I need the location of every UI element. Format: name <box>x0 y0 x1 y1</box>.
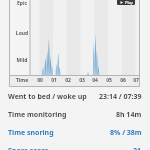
staticText: 02 <box>61 77 75 84</box>
staticText: 07 <box>129 77 143 84</box>
staticText: Mild <box>14 57 30 64</box>
staticText: Snore score <box>8 146 49 150</box>
button[interactable]: Time monitoring <box>0 106 150 124</box>
staticText: 04 <box>88 77 102 84</box>
staticText: Play <box>124 0 133 5</box>
staticText: Epic <box>14 0 30 7</box>
button[interactable]: Play <box>117 0 135 5</box>
staticText: 05 <box>102 77 116 84</box>
staticText: Time monitoring <box>8 110 67 120</box>
staticText: 23:14 / 07:39 <box>99 92 142 102</box>
staticText: 8h 14m <box>116 110 142 120</box>
staticText: 8% / 38m <box>110 128 142 138</box>
staticText: 00 <box>33 77 47 84</box>
staticText: 06 <box>116 77 130 84</box>
staticText: 01 <box>47 77 61 84</box>
staticText: Time <box>14 77 30 84</box>
button[interactable]: Went to bed / woke up <box>0 88 150 106</box>
staticText: Loud <box>14 30 30 37</box>
button[interactable]: Time snoring <box>0 124 150 142</box>
staticText: Time snoring <box>8 128 54 138</box>
staticText: 21 <box>133 146 142 150</box>
button[interactable]: Snore score <box>0 142 150 150</box>
staticText: Went to bed / woke up <box>8 92 87 102</box>
staticText: 03 <box>75 77 89 84</box>
